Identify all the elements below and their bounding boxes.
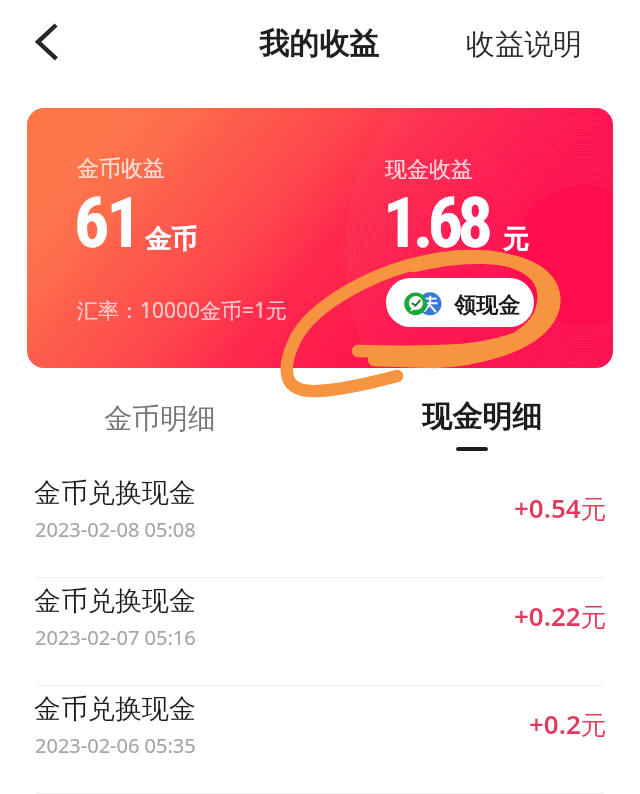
staticText: 金币	[145, 223, 197, 256]
staticText: 金币明细	[104, 401, 216, 436]
staticText: 我的收益	[259, 25, 379, 63]
staticText: +0.2元	[529, 706, 607, 742]
button[interactable]: Back	[20, 18, 68, 66]
staticText: 汇率：10000金币=1元	[77, 296, 288, 325]
staticText: 1.68	[383, 182, 488, 264]
button[interactable]: 金币兑换现金	[0, 686, 640, 794]
staticText: 金币收益	[77, 155, 165, 183]
button[interactable]: 金币明细	[60, 401, 260, 445]
staticText: 2023-02-08 05:08	[35, 516, 196, 543]
button[interactable]: 现金明细	[382, 398, 582, 458]
staticText: +0.22元	[514, 598, 607, 634]
staticText: 收益说明	[466, 26, 582, 63]
button[interactable]: 金币兑换现金	[0, 578, 640, 686]
staticText: 领现金	[454, 292, 520, 320]
staticText: 金币兑换现金	[34, 692, 196, 726]
staticText: 元	[503, 223, 529, 256]
staticText: +0.54元	[514, 490, 607, 526]
staticText: 2023-02-07 05:16	[35, 624, 196, 651]
button[interactable]: 金币兑换现金	[0, 470, 640, 578]
button[interactable]: 收益说明	[466, 26, 582, 63]
button[interactable]: 领现金	[386, 278, 534, 327]
staticText: 金币兑换现金	[34, 476, 196, 510]
staticText: 61	[74, 182, 139, 264]
staticText: 金币兑换现金	[34, 584, 196, 618]
staticText: 2023-02-06 05:35	[35, 732, 196, 759]
staticText: 现金明细	[422, 398, 542, 436]
staticText: 现金收益	[385, 156, 473, 184]
